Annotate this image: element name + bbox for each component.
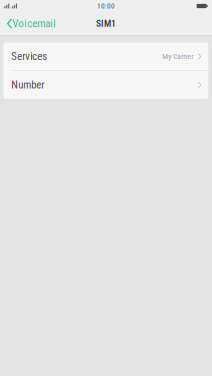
staticText: Number (11, 79, 44, 91)
button[interactable]: Voicemail (0, 12, 60, 35)
staticText: Services (11, 50, 47, 63)
staticText: My Carrier (162, 52, 193, 61)
staticText: SIM1 (96, 18, 116, 29)
staticText: 10:00 (97, 2, 115, 10)
button[interactable]: Services (4, 42, 208, 70)
button[interactable]: Number (4, 71, 208, 99)
staticText: Voicemail (12, 17, 56, 30)
